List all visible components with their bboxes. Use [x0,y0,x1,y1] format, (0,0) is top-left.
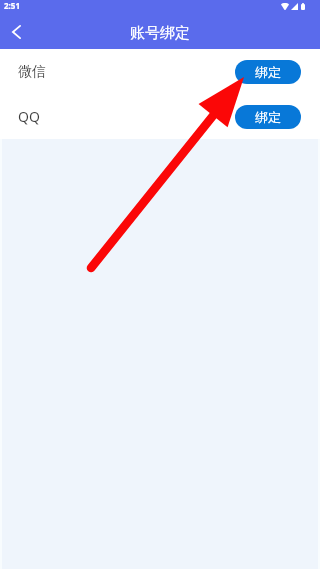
staticText: 绑定 [255,64,281,80]
button[interactable]: 微信 [0,49,320,94]
staticText: 绑定 [255,109,281,125]
button[interactable]: 绑定 [235,60,301,84]
staticText: 账号绑定 [130,24,190,43]
button[interactable]: 绑定 [235,105,301,129]
button[interactable]: QQ [0,94,320,139]
staticText: QQ [18,107,40,126]
staticText: 微信 [18,63,46,81]
staticText: 2:51 [4,0,20,11]
button[interactable]: Back [0,15,33,48]
